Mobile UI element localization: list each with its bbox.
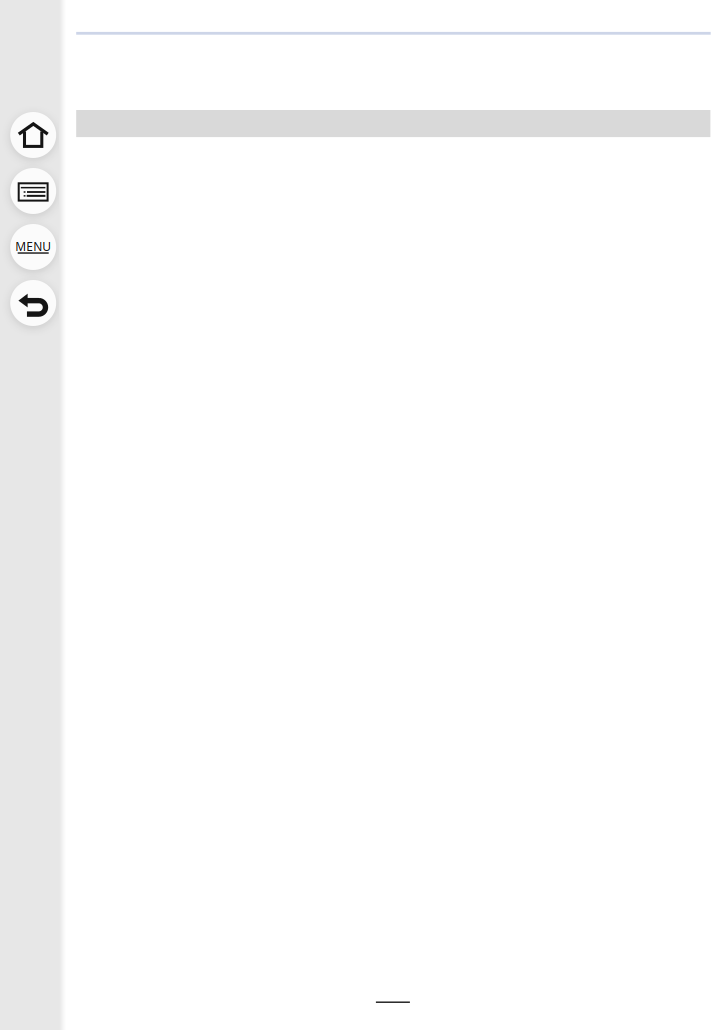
- button[interactable]: Contents: [1, 163, 57, 219]
- button[interactable]: Menu: [1, 219, 57, 275]
- button[interactable]: Back: [1, 275, 57, 331]
- button[interactable]: Home: [1, 107, 57, 163]
- staticText: MENU: [15, 238, 51, 254]
